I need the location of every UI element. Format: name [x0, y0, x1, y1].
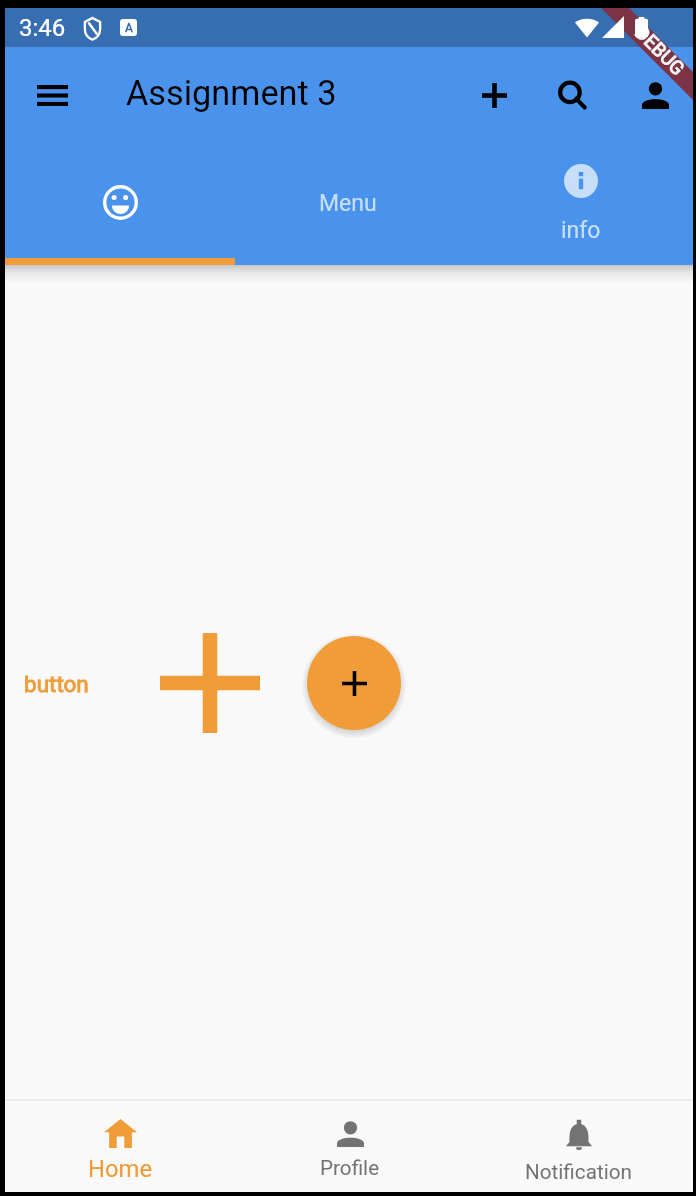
staticText: A — [125, 21, 133, 35]
staticText: 3:46 — [19, 14, 66, 42]
staticText: Notification — [525, 1160, 632, 1184]
staticText: button — [24, 671, 89, 697]
button[interactable]: Profile — [235, 1095, 464, 1192]
staticText: info — [561, 217, 601, 244]
button[interactable]: info — [464, 47, 693, 265]
button[interactable]: Menu — [24, 72, 80, 118]
button[interactable]: Notification — [464, 1095, 693, 1192]
button[interactable]: button — [24, 671, 89, 697]
button[interactable]: Add — [307, 636, 401, 730]
button[interactable]: Add — [466, 67, 522, 123]
staticText: Home — [88, 1155, 153, 1183]
staticText: Assignment 3 — [126, 73, 337, 113]
staticText: Menu — [319, 190, 377, 217]
button[interactable]: Home — [5, 1095, 235, 1192]
button[interactable]: Smiley tab — [5, 47, 235, 265]
staticText: DEBUG — [631, 21, 690, 80]
button[interactable]: Add item — [160, 633, 260, 733]
staticText: Profile — [320, 1156, 380, 1180]
button[interactable]: Account — [627, 72, 682, 118]
button[interactable]: Menu — [235, 47, 464, 265]
button[interactable]: Search — [544, 67, 600, 123]
